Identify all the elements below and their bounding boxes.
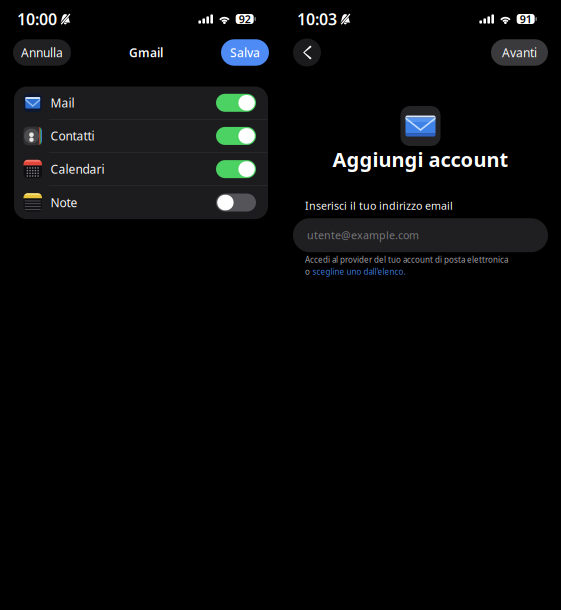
staticText: Salva	[230, 44, 260, 60]
staticText: Calendari	[50, 161, 104, 177]
button[interactable]: Salva	[221, 39, 269, 66]
staticText: utente@example.com	[307, 228, 419, 242]
staticText: 10:03	[297, 8, 337, 30]
staticText: scegline uno dall'elenco.	[312, 266, 405, 277]
button[interactable]: scegline uno dall'elenco.	[312, 266, 405, 277]
staticText: o	[305, 266, 310, 277]
button[interactable]: Note	[14, 186, 268, 219]
staticText: 91	[520, 12, 532, 26]
button[interactable]: Avanti	[491, 39, 548, 66]
staticText: Inserisci il tuo indirizzo email	[305, 199, 453, 213]
staticText: Annulla	[21, 44, 63, 60]
button[interactable]: Indirizzo email	[293, 218, 548, 252]
staticText: Mail	[50, 95, 74, 111]
button[interactable]: Calendari	[14, 153, 268, 186]
staticText: Aggiungi account	[332, 146, 508, 173]
staticText: 10:00	[17, 8, 57, 30]
staticText: Accedi al provider del tuo account di po…	[305, 254, 508, 265]
staticText: Avanti	[502, 44, 537, 60]
staticText: Contatti	[50, 128, 94, 144]
button[interactable]: Contatti	[14, 120, 268, 153]
button[interactable]: Mail	[14, 86, 268, 120]
staticText: Note	[50, 195, 77, 210]
staticText: 92	[239, 12, 251, 26]
button[interactable]: Annulla	[13, 39, 71, 66]
button[interactable]: Indietro	[293, 38, 321, 66]
staticText: Gmail	[129, 44, 163, 60]
